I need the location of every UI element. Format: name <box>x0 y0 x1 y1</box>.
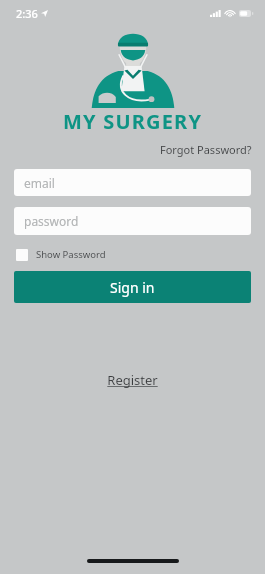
staticText: Forgot Password? <box>160 142 252 157</box>
button[interactable]: Show Password <box>14 246 108 263</box>
staticText: email <box>24 175 55 191</box>
button[interactable]: Register <box>101 365 164 395</box>
staticText: Sign in <box>110 278 155 297</box>
button[interactable]: Sign in <box>14 271 251 303</box>
staticText: MY SURGERY <box>63 108 203 135</box>
staticText: 2:36 <box>16 6 38 21</box>
button[interactable]: Forgot Password? <box>160 140 265 159</box>
staticText: Show Password <box>36 248 106 261</box>
staticText: password <box>24 213 79 229</box>
button[interactable]: password <box>14 207 251 235</box>
button[interactable]: email <box>14 169 251 196</box>
staticText: Register <box>107 371 158 389</box>
